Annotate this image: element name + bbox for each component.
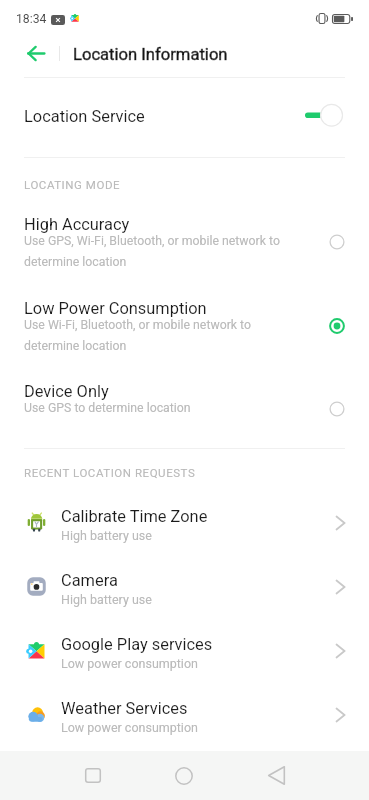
button[interactable]: Home	[152, 751, 216, 800]
staticText: Low power consumption	[61, 656, 198, 671]
button[interactable]: Camera	[0, 555, 369, 619]
button[interactable]: Location Service	[0, 78, 369, 157]
staticText: Calibrate Time Zone	[61, 507, 208, 526]
button[interactable]: Calibrate Time Zone	[0, 491, 369, 555]
staticText: Location Service	[24, 107, 145, 126]
staticText: Location Information	[73, 45, 228, 64]
button[interactable]: Device Only	[0, 372, 369, 456]
staticText: High Accuracy	[24, 215, 130, 234]
staticText: 18:34	[16, 12, 47, 26]
staticText: RECENT LOCATION REQUESTS	[24, 466, 196, 479]
staticText: Device Only	[24, 382, 109, 401]
staticText: Low Power Consumption	[24, 299, 207, 318]
staticText: Use GPS, Wi-Fi, Bluetooth, or mobile net…	[24, 234, 280, 269]
button[interactable]: Google Play services	[0, 619, 369, 683]
staticText: Location Information	[73, 45, 228, 64]
staticText: High battery use	[61, 528, 152, 543]
button[interactable]: High Accuracy	[0, 205, 369, 289]
button[interactable]: Back	[16, 36, 56, 71]
staticText: Weather Services	[61, 699, 188, 718]
staticText: Google Play services	[61, 635, 213, 654]
staticText: Use Wi-Fi, Bluetooth, or mobile network …	[24, 318, 252, 353]
staticText: Use GPS to determine location	[24, 401, 191, 415]
staticText: High battery use	[61, 592, 152, 607]
staticText: LOCATING MODE	[24, 178, 121, 191]
button[interactable]: Recent apps	[61, 751, 125, 800]
button[interactable]: Low Power Consumption	[0, 289, 369, 373]
button[interactable]: Back	[244, 751, 308, 800]
staticText: Low power consumption	[61, 720, 198, 735]
staticText: Camera	[61, 571, 118, 590]
button[interactable]: Weather Services	[0, 683, 369, 747]
